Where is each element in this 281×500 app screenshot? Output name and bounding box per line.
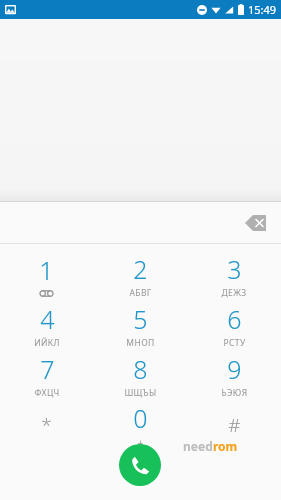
button[interactable]: 4	[0, 300, 93, 350]
button[interactable]: 6	[187, 300, 281, 350]
button[interactable]: 5	[93, 300, 187, 350]
staticText: 4	[40, 302, 55, 336]
staticText: МНОП	[126, 337, 155, 349]
staticText: РСТУ	[223, 337, 246, 349]
staticText: 9	[227, 352, 242, 386]
staticText: ЬЭЮЯ	[221, 387, 248, 399]
button[interactable]: 1	[0, 250, 93, 300]
staticText: 8	[133, 352, 148, 386]
staticText: rom	[213, 438, 238, 454]
button[interactable]: 7	[0, 350, 93, 400]
staticText: 7	[40, 352, 55, 386]
staticText: 15:49	[248, 2, 277, 17]
button[interactable]: Call	[119, 444, 161, 486]
staticText: +	[137, 436, 144, 450]
staticText: ШЩЪЫ	[124, 387, 157, 399]
staticText: need	[183, 438, 213, 454]
staticText: 2	[133, 252, 148, 286]
button[interactable]: 8	[93, 350, 187, 400]
staticText: 5	[133, 302, 148, 336]
staticText: 3	[227, 252, 242, 286]
staticText: ИЙКЛ	[34, 337, 60, 349]
button[interactable]: 0	[93, 400, 187, 450]
button[interactable]: #	[187, 400, 281, 450]
staticText: 6	[227, 302, 242, 336]
staticText: ДЕЖЗ	[221, 287, 247, 299]
button[interactable]: *	[0, 400, 93, 450]
button[interactable]: 2	[93, 250, 187, 300]
button[interactable]: Backspace	[239, 208, 273, 238]
staticText: АБВГ	[129, 287, 152, 299]
staticText: *	[41, 412, 52, 438]
button[interactable]: 9	[187, 350, 281, 400]
button[interactable]: 3	[187, 250, 281, 300]
staticText: 1	[39, 253, 54, 287]
staticText: #	[228, 412, 241, 438]
staticText: ФХЦЧ	[34, 387, 60, 399]
staticText: 0	[133, 401, 148, 435]
